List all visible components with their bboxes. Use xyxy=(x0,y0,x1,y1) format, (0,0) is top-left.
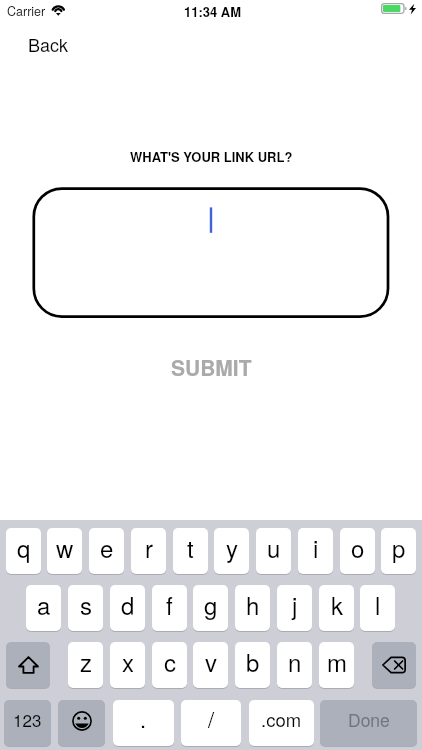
button[interactable]: . xyxy=(113,700,174,746)
staticText: 123 xyxy=(13,707,42,731)
staticText: l xyxy=(375,587,381,621)
staticText: x xyxy=(122,644,134,678)
button[interactable]: q xyxy=(6,528,41,574)
staticText: a xyxy=(37,587,51,621)
staticText: SUBMIT xyxy=(171,352,252,382)
button[interactable]: i xyxy=(298,528,333,574)
button[interactable]: r xyxy=(131,528,166,574)
button[interactable]: h xyxy=(235,585,270,631)
staticText: y xyxy=(226,530,238,564)
staticText: d xyxy=(121,587,135,621)
staticText: Back xyxy=(28,31,69,57)
staticText: m xyxy=(327,644,347,678)
staticText: h xyxy=(246,587,260,621)
staticText: / xyxy=(208,703,215,735)
staticText: b xyxy=(246,644,260,678)
button[interactable]: p xyxy=(381,528,416,574)
button[interactable] xyxy=(33,188,388,317)
button[interactable]: k xyxy=(319,585,354,631)
staticText: e xyxy=(100,530,114,564)
button[interactable]: n xyxy=(277,642,312,688)
button[interactable]: Done xyxy=(320,700,417,746)
button[interactable]: b xyxy=(235,642,270,688)
button[interactable]: SUBMIT xyxy=(151,350,271,384)
staticText: p xyxy=(392,530,406,564)
button[interactable]: Backspace xyxy=(372,642,416,688)
button[interactable]: y xyxy=(214,528,249,574)
button[interactable]: Shift xyxy=(6,642,50,688)
staticText: n xyxy=(288,644,302,678)
button[interactable]: w xyxy=(47,528,82,574)
staticText: z xyxy=(80,644,92,678)
staticText: c xyxy=(164,644,176,678)
button[interactable]: .com xyxy=(249,700,314,746)
button[interactable]: d xyxy=(110,585,145,631)
button[interactable]: a xyxy=(26,585,61,631)
button[interactable]: Back xyxy=(20,29,76,59)
button[interactable]: j xyxy=(277,585,312,631)
staticText: WHAT'S YOUR LINK URL? xyxy=(130,147,293,166)
staticText: u xyxy=(267,530,281,564)
staticText: j xyxy=(292,587,298,621)
button[interactable]: c xyxy=(152,642,187,688)
button[interactable]: Emoji keyboard xyxy=(58,700,105,746)
button[interactable]: v xyxy=(193,642,228,688)
button[interactable]: l xyxy=(360,585,395,631)
staticText: g xyxy=(204,587,218,621)
button[interactable]: f xyxy=(152,585,187,631)
staticText: 11:34 AM xyxy=(184,2,242,21)
staticText: s xyxy=(80,587,92,621)
button[interactable]: z xyxy=(68,642,103,688)
staticText: .com xyxy=(261,706,302,732)
staticText: k xyxy=(331,587,343,621)
staticText: t xyxy=(187,530,194,564)
staticText: Done xyxy=(348,707,390,732)
staticText: i xyxy=(313,530,319,564)
button[interactable]: m xyxy=(319,642,354,688)
staticText: v xyxy=(205,644,217,678)
button[interactable]: u xyxy=(256,528,291,574)
staticText: w xyxy=(56,530,74,564)
staticText: . xyxy=(140,703,147,735)
button[interactable]: g xyxy=(193,585,228,631)
staticText: f xyxy=(166,587,173,621)
staticText: r xyxy=(145,530,153,564)
staticText: Carrier xyxy=(7,2,46,20)
button[interactable]: 123 xyxy=(4,700,51,746)
button[interactable]: / xyxy=(181,700,241,746)
button[interactable]: e xyxy=(89,528,124,574)
button[interactable]: o xyxy=(340,528,375,574)
button[interactable]: t xyxy=(173,528,208,574)
button[interactable]: s xyxy=(68,585,103,631)
button[interactable]: x xyxy=(110,642,145,688)
staticText: q xyxy=(17,530,31,564)
staticText: o xyxy=(351,530,365,564)
